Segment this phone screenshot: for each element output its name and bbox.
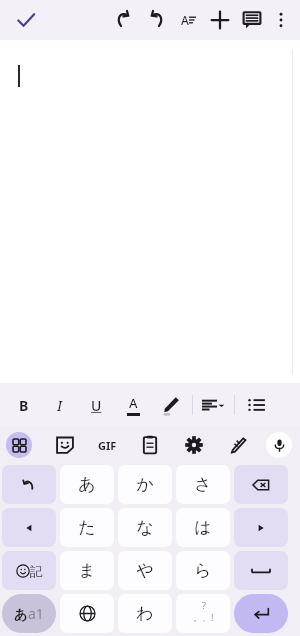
staticText: U [91, 396, 102, 415]
staticText: GIF [98, 438, 117, 453]
button[interactable]: GIF [98, 434, 117, 456]
button[interactable]: か [118, 465, 172, 504]
button[interactable]: Backspace [234, 465, 288, 504]
button[interactable]: Insert [205, 5, 235, 35]
button[interactable]: Comments [237, 5, 267, 35]
staticText: 。 [193, 612, 202, 623]
button[interactable]: Redo [141, 5, 171, 35]
button[interactable]: あ [60, 465, 114, 504]
button[interactable]: Emoji and symbols [2, 551, 56, 590]
staticText: さ [194, 474, 212, 495]
button[interactable]: Space [234, 551, 288, 590]
staticText: ? [202, 599, 206, 611]
button[interactable]: な [118, 508, 172, 547]
button[interactable]: Underline [84, 393, 108, 417]
button[interactable]: Punctuation [176, 594, 230, 633]
button[interactable]: Highlight [157, 392, 183, 418]
button[interactable]: ま [60, 551, 114, 590]
staticText: な [136, 517, 154, 538]
button[interactable]: Voice input [266, 432, 292, 458]
button[interactable]: Handwriting [227, 434, 249, 456]
button[interactable]: Enter [234, 594, 288, 633]
button[interactable]: Done [14, 8, 38, 32]
button[interactable]: Undo [109, 5, 139, 35]
staticText: あ [78, 474, 96, 495]
staticText: 記 [30, 563, 43, 579]
button[interactable]: Formatting [173, 5, 203, 35]
button[interactable]: Alignment [202, 392, 225, 418]
staticText: 、 [202, 612, 211, 623]
staticText: た [78, 517, 96, 538]
staticText: あ [14, 606, 28, 622]
button[interactable]: Change language [60, 594, 114, 633]
button[interactable]: わ [118, 594, 172, 633]
button[interactable]: さ [176, 465, 230, 504]
staticText: ! [211, 611, 214, 623]
button[interactable]: Apps [6, 432, 32, 458]
staticText: は [194, 517, 212, 538]
button[interactable]: Settings [183, 434, 205, 456]
button[interactable]: や [118, 551, 172, 590]
button[interactable]: Undo [2, 465, 56, 504]
button[interactable]: Italic [48, 393, 72, 417]
button[interactable]: Bold [12, 393, 36, 417]
button[interactable]: Text colour [120, 392, 146, 418]
button[interactable]: は [176, 508, 230, 547]
staticText: A [181, 12, 189, 28]
staticText: ま [78, 560, 96, 581]
staticText: A [129, 394, 138, 412]
button[interactable]: More options [268, 7, 294, 33]
button[interactable]: Bulleted list [246, 394, 268, 416]
button[interactable]: Move cursor left [2, 508, 56, 547]
staticText: ら [194, 560, 212, 581]
staticText: や [136, 560, 154, 581]
staticText: B [19, 396, 29, 415]
staticText: か [136, 474, 154, 495]
button[interactable]: Switch input mode [2, 594, 56, 633]
button[interactable]: Move cursor right [234, 508, 288, 547]
button[interactable]: Stickers [54, 434, 76, 456]
staticText: わ [136, 603, 154, 624]
button[interactable]: ら [176, 551, 230, 590]
staticText: a1 [28, 604, 44, 623]
button[interactable]: Clipboard [139, 434, 161, 456]
staticText: I [57, 396, 63, 415]
button[interactable]: た [60, 508, 114, 547]
